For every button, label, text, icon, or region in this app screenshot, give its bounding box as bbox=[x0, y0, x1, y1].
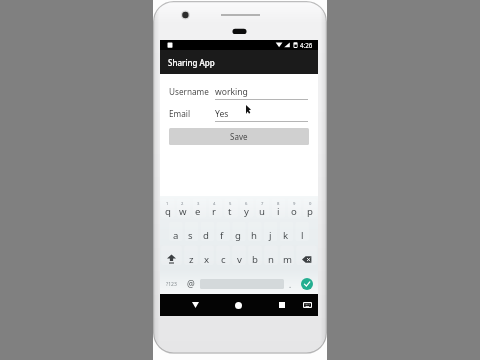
staticText: t bbox=[228, 205, 232, 218]
button[interactable]: l bbox=[294, 228, 310, 242]
staticText: s bbox=[188, 229, 193, 242]
staticText: working bbox=[215, 86, 248, 98]
staticText: f bbox=[220, 229, 224, 242]
staticText: z bbox=[189, 253, 194, 266]
button[interactable]: q bbox=[160, 204, 175, 218]
staticText: n bbox=[268, 253, 274, 266]
staticText: 5 bbox=[229, 201, 232, 207]
staticText: 7 bbox=[261, 201, 264, 207]
staticText: a bbox=[173, 229, 179, 242]
button[interactable]: e bbox=[190, 204, 206, 218]
staticText: m bbox=[283, 253, 292, 266]
staticText: 4 bbox=[213, 201, 216, 207]
staticText: i bbox=[277, 205, 280, 218]
button[interactable]: Backspace bbox=[295, 251, 318, 267]
button[interactable]: d bbox=[198, 228, 214, 242]
staticText: @ bbox=[187, 278, 195, 290]
staticText: v bbox=[237, 253, 242, 266]
staticText: r bbox=[212, 205, 216, 218]
staticText: h bbox=[251, 229, 257, 242]
staticText: g bbox=[235, 229, 241, 242]
button[interactable]: ?123 bbox=[160, 275, 182, 293]
staticText: 9 bbox=[293, 201, 296, 207]
button[interactable]: m bbox=[279, 251, 295, 267]
staticText: . bbox=[289, 279, 292, 290]
staticText: 4:26 bbox=[300, 41, 313, 49]
staticText: 2 bbox=[181, 201, 184, 207]
button[interactable]: @ bbox=[182, 275, 200, 293]
button[interactable]: s bbox=[183, 228, 198, 242]
button[interactable]: w bbox=[175, 204, 190, 218]
button[interactable]: a bbox=[168, 228, 183, 242]
staticText: Email bbox=[169, 108, 191, 119]
staticText: u bbox=[259, 205, 265, 218]
staticText: k bbox=[283, 229, 289, 242]
staticText: e bbox=[195, 205, 201, 218]
staticText: 3 bbox=[197, 201, 200, 207]
staticText: 6 bbox=[245, 201, 248, 207]
button[interactable]: o bbox=[286, 204, 302, 218]
button[interactable]: n bbox=[263, 251, 279, 267]
button[interactable]: c bbox=[215, 251, 231, 267]
button[interactable]: u bbox=[254, 204, 270, 218]
button[interactable]: Recents bbox=[274, 297, 290, 313]
staticText: q bbox=[165, 205, 171, 218]
staticText: Save bbox=[230, 131, 248, 142]
staticText: 8 bbox=[277, 201, 280, 207]
button[interactable]: Back bbox=[187, 297, 203, 313]
staticText: x bbox=[204, 253, 210, 266]
button[interactable]: f bbox=[214, 228, 230, 242]
button[interactable]: Enter bbox=[296, 275, 318, 293]
button[interactable]: i bbox=[270, 204, 286, 218]
button[interactable]: . bbox=[284, 275, 296, 293]
button[interactable]: Keyboard bbox=[300, 298, 314, 312]
staticText: c bbox=[221, 253, 226, 266]
staticText: 1 bbox=[166, 201, 169, 207]
button[interactable]: x bbox=[199, 251, 215, 267]
button[interactable]: Save bbox=[169, 128, 309, 145]
button[interactable]: t bbox=[222, 204, 238, 218]
button[interactable]: r bbox=[206, 204, 222, 218]
staticText: p bbox=[307, 205, 313, 218]
staticText: d bbox=[203, 229, 209, 242]
button[interactable]: g bbox=[230, 228, 246, 242]
staticText: b bbox=[252, 253, 258, 266]
staticText: Yes bbox=[215, 108, 229, 120]
staticText: 0 bbox=[309, 201, 312, 207]
staticText: Sharing App bbox=[168, 57, 215, 68]
button[interactable]: Shift bbox=[160, 251, 183, 267]
staticText: ?123 bbox=[166, 281, 177, 288]
staticText: w bbox=[179, 205, 187, 218]
staticText: j bbox=[269, 229, 272, 242]
staticText: y bbox=[244, 205, 249, 218]
button[interactable]: h bbox=[246, 228, 262, 242]
button[interactable]: k bbox=[278, 228, 294, 242]
button[interactable]: z bbox=[183, 251, 199, 267]
staticText: Username bbox=[169, 86, 209, 97]
button[interactable]: v bbox=[231, 251, 247, 267]
button[interactable]: j bbox=[262, 228, 278, 242]
button[interactable]: b bbox=[247, 251, 263, 267]
button[interactable]: y bbox=[238, 204, 254, 218]
button[interactable]: Home bbox=[230, 297, 246, 313]
button[interactable]: p bbox=[302, 204, 318, 218]
staticText: l bbox=[301, 229, 304, 242]
staticText: o bbox=[291, 205, 297, 218]
